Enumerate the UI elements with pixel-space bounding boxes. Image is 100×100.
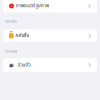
- button[interactable]: ภาพยนตร์ รูปภาพ: [3, 0, 97, 12]
- staticText: การแชร์: [5, 48, 17, 54]
- staticText: คลังสื่อ: [15, 32, 29, 39]
- staticText: ความจำ: [5, 18, 17, 24]
- staticText: ส่วนตัว: [18, 62, 31, 68]
- staticText: ภาพยนตร์ รูปภาพ: [16, 3, 49, 9]
- button[interactable]: คลังสื่อ: [3, 29, 97, 42]
- button[interactable]: ส่วนตัว: [3, 58, 97, 72]
